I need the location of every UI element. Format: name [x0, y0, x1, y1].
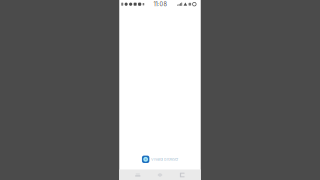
- button[interactable]: Home: [156, 169, 164, 180]
- staticText: Vivaldi Browser: [151, 157, 178, 162]
- button[interactable]: Menu: [178, 169, 186, 180]
- staticText: 11:08: [153, 1, 166, 8]
- button[interactable]: Tabs: [134, 169, 141, 180]
- button[interactable]: Vivaldi Browser: [119, 156, 201, 169]
